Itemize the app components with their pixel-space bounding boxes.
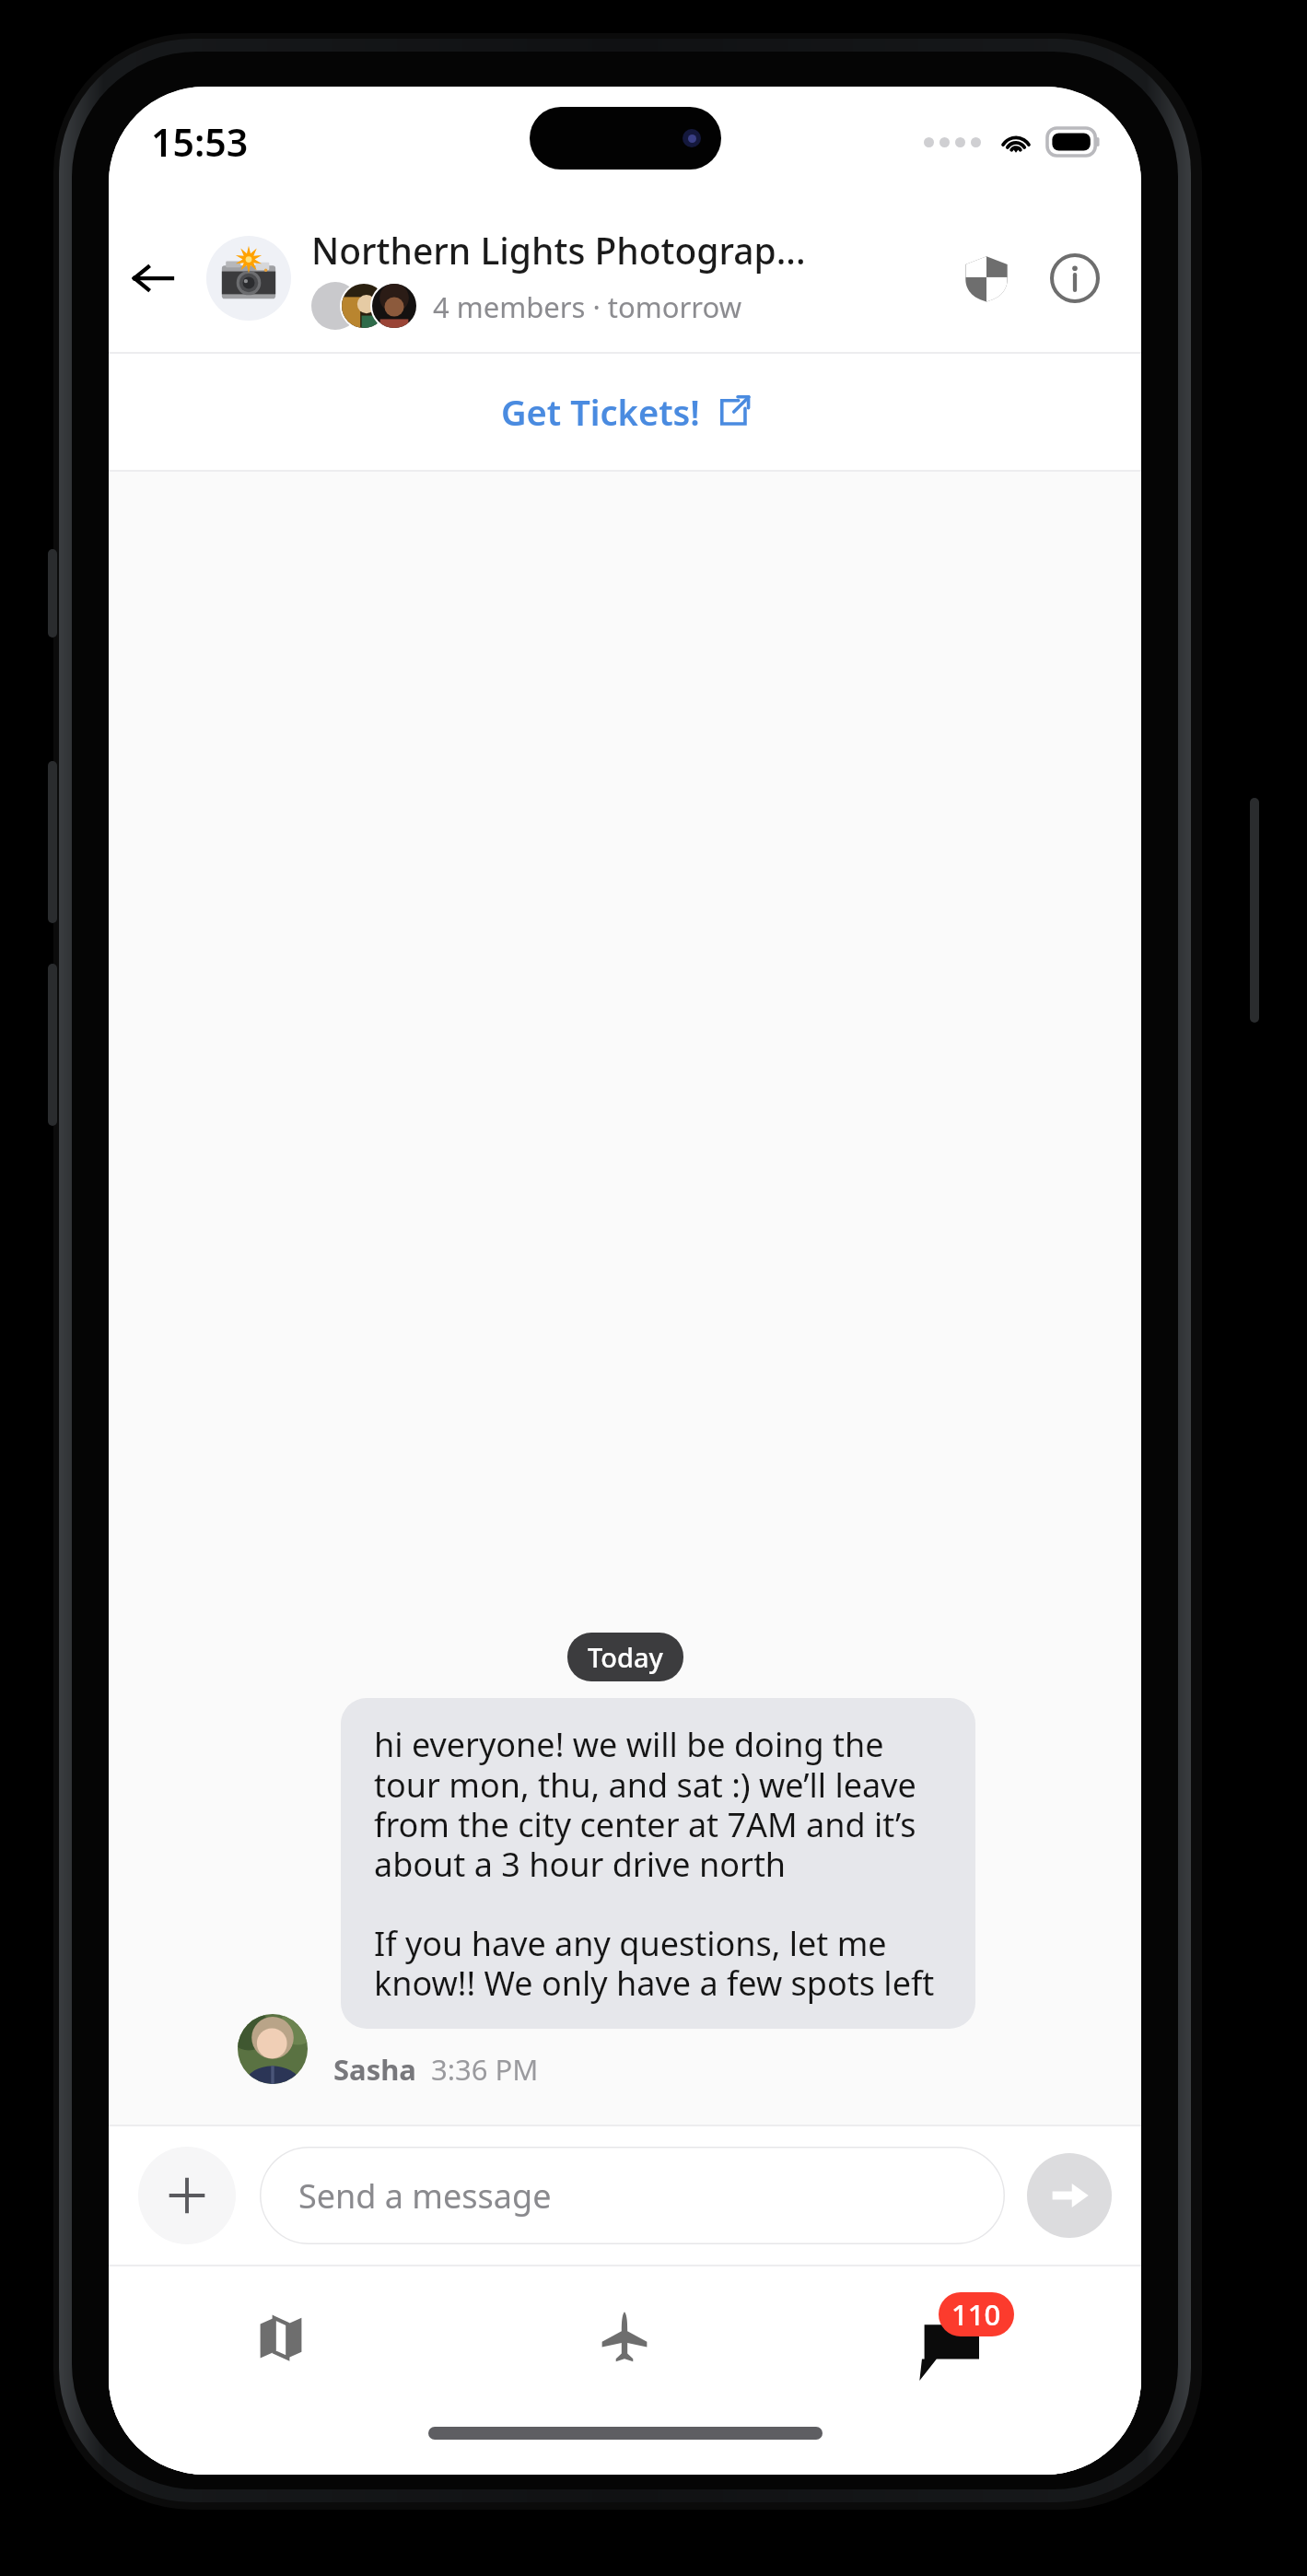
staticText: hi everyone! we will be doing the tour m…: [374, 1722, 942, 2005]
button[interactable]: Get Tickets!: [109, 354, 1141, 470]
button[interactable]: Map: [109, 2266, 452, 2406]
button[interactable]: Info: [1033, 236, 1117, 321]
staticText: Sasha: [333, 2050, 416, 2089]
button[interactable]: Send a message: [260, 2147, 1005, 2244]
button[interactable]: Group photo: [206, 236, 291, 321]
button[interactable]: Flights: [452, 2266, 797, 2406]
button[interactable]: hi everyone! we will be doing the tour m…: [341, 1698, 975, 2029]
button[interactable]: Send: [1027, 2153, 1112, 2238]
staticText: Send a message: [298, 2173, 552, 2219]
staticText: Northern Lights Photograp...: [311, 226, 806, 275]
staticText: 4 members · tomorrow: [433, 287, 742, 326]
staticText: Get Tickets!: [501, 388, 700, 436]
button[interactable]: Back: [109, 234, 197, 322]
button[interactable]: Chats, 110 unread: [797, 2266, 1141, 2406]
button[interactable]: Safety: [944, 236, 1029, 321]
staticText: 3:36 PM: [431, 2050, 539, 2089]
staticText: 15:53: [151, 116, 249, 168]
button[interactable]: Northern Lights Photograp...: [311, 226, 944, 332]
button[interactable]: Add attachment: [138, 2147, 236, 2244]
staticText: 110: [951, 2295, 1001, 2334]
staticText: Today: [588, 1639, 663, 1675]
